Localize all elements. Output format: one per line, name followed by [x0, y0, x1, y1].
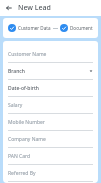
staticText: New Lead [18, 3, 51, 13]
button[interactable]: Company Name [8, 131, 93, 148]
button[interactable]: Salary [8, 97, 93, 114]
button[interactable]: Back [4, 3, 14, 13]
staticText: Document [70, 25, 93, 31]
staticText: Salary [8, 102, 23, 109]
staticText: Customer Data [18, 25, 51, 31]
staticText: Company Name [8, 136, 46, 143]
button[interactable]: Referred By [8, 165, 93, 182]
button[interactable]: Customer Name [8, 46, 93, 63]
button[interactable]: Mobile Number [8, 114, 93, 131]
staticText: Customer Name [8, 51, 47, 58]
staticText: Branch [8, 68, 25, 75]
staticText: Date-of-birth [8, 85, 39, 92]
button[interactable]: Document [60, 24, 93, 32]
button[interactable]: Branch [8, 63, 93, 80]
button[interactable]: Date-of-birth [8, 80, 93, 97]
staticText: Mobile Number [8, 119, 45, 126]
button[interactable]: Customer Data [8, 24, 51, 32]
staticText: PAN Card [8, 153, 31, 160]
button[interactable]: PAN Card [8, 148, 93, 165]
staticText: Referred By [8, 170, 36, 177]
